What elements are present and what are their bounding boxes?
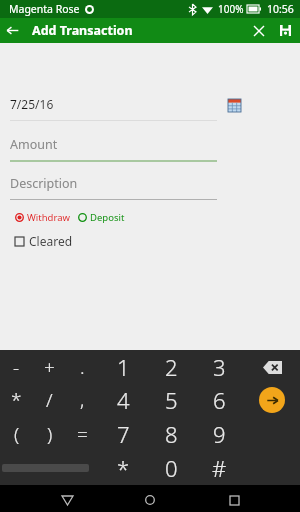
button[interactable]: 2: [147, 350, 195, 383]
staticText: 5: [165, 385, 178, 415]
button[interactable]: /: [33, 383, 66, 417]
button[interactable]: Cleared: [15, 233, 73, 249]
staticText: 10:56: [267, 2, 294, 16]
staticText: /: [46, 387, 53, 413]
staticText: 3: [213, 352, 226, 382]
staticText: +: [44, 354, 55, 380]
staticText: Cleared: [29, 233, 73, 249]
button[interactable]: 9: [195, 417, 243, 451]
button[interactable]: ): [33, 417, 66, 451]
button[interactable]: Deposit: [78, 211, 125, 224]
button[interactable]: -: [0, 350, 33, 383]
button[interactable]: *: [0, 383, 33, 417]
staticText: ,: [80, 387, 85, 413]
staticText: 7: [117, 419, 130, 449]
button[interactable]: 6: [195, 383, 243, 417]
staticText: 4: [117, 385, 130, 415]
button[interactable]: *: [99, 451, 147, 485]
button[interactable]: Home: [133, 488, 167, 512]
button[interactable]: 0: [147, 451, 195, 485]
staticText: Description: [10, 175, 78, 192]
staticText: =: [77, 421, 88, 447]
button[interactable]: Recents: [217, 488, 251, 512]
button[interactable]: .: [66, 350, 99, 383]
button[interactable]: Space: [0, 451, 99, 485]
staticText: 7/25/16: [10, 96, 54, 112]
button[interactable]: 3: [195, 350, 243, 383]
staticText: 0: [165, 453, 178, 483]
button[interactable]: #: [195, 451, 243, 485]
button[interactable]: 8: [147, 417, 195, 451]
button[interactable]: Back: [50, 488, 84, 512]
button[interactable]: Close: [246, 18, 272, 43]
button[interactable]: 5: [147, 383, 195, 417]
button[interactable]: Back: [0, 18, 25, 43]
staticText: 6: [213, 385, 226, 415]
staticText: (: [14, 421, 20, 447]
staticText: 9: [213, 419, 226, 449]
button[interactable]: +: [33, 350, 66, 383]
button[interactable]: 7: [99, 417, 147, 451]
staticText: Magenta Rose: [9, 2, 80, 16]
staticText: 8: [165, 419, 178, 449]
staticText: *: [11, 387, 22, 413]
staticText: 2: [165, 352, 178, 382]
staticText: .: [80, 354, 85, 380]
staticText: ): [47, 421, 53, 447]
button[interactable]: Pick date: [224, 95, 244, 115]
button[interactable]: Save: [272, 18, 298, 43]
staticText: -: [13, 354, 20, 380]
button[interactable]: 1: [99, 350, 147, 383]
staticText: Withdraw: [27, 211, 70, 224]
staticText: Deposit: [90, 211, 125, 224]
staticText: Amount: [10, 136, 58, 153]
staticText: 100%: [218, 2, 244, 16]
button[interactable]: ,: [66, 383, 99, 417]
button[interactable]: =: [66, 417, 99, 451]
button[interactable]: Backspace: [255, 352, 289, 382]
button[interactable]: (: [0, 417, 33, 451]
staticText: 1: [117, 352, 130, 382]
staticText: Add Transaction: [32, 22, 133, 39]
button[interactable]: Withdraw: [15, 211, 70, 224]
button[interactable]: 4: [99, 383, 147, 417]
staticText: #: [212, 453, 227, 483]
button[interactable]: Enter: [259, 387, 285, 413]
staticText: *: [117, 453, 130, 483]
